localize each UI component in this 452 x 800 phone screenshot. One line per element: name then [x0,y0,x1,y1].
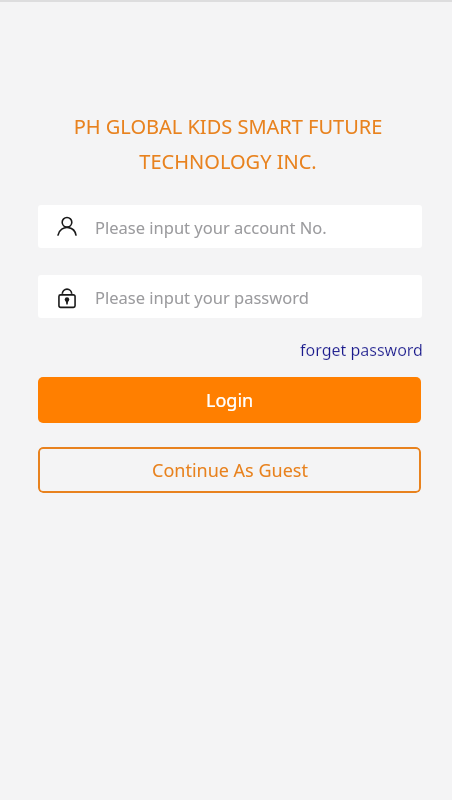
staticText: Please input your password [95,286,309,308]
staticText: forget password [300,339,423,361]
button[interactable]: forget password [298,337,425,363]
button[interactable]: Account [38,205,422,248]
button[interactable]: Password [38,275,422,318]
staticText: Login [206,388,254,413]
button[interactable]: Login [38,377,421,423]
staticText: Please input your account No. [95,216,327,238]
other: Password [38,284,95,310]
staticText: PH GLOBAL KIDS SMART FUTURE TECHNOLOGY I… [30,113,426,175]
other: Account [38,214,95,240]
button[interactable]: Continue As Guest [38,447,421,493]
staticText: Continue As Guest [152,458,308,483]
